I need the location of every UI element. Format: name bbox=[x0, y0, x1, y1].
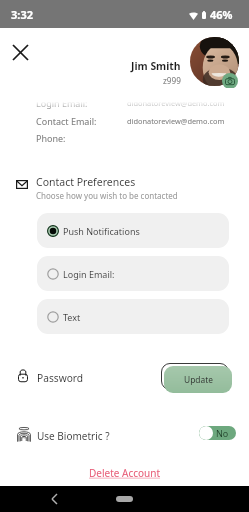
button[interactable]: Push Notifications bbox=[37, 213, 229, 248]
staticText: 3:32 bbox=[11, 7, 33, 22]
staticText: didonatoreview@demo.com bbox=[127, 116, 225, 126]
button[interactable]: Change photo bbox=[222, 73, 238, 89]
staticText: Phone: bbox=[36, 132, 66, 144]
staticText: No bbox=[216, 427, 229, 439]
staticText: Contact Preferences bbox=[36, 175, 136, 189]
staticText: Update bbox=[184, 374, 213, 385]
staticText: didonatoreview@demo.com bbox=[127, 98, 225, 108]
button[interactable]: Close bbox=[8, 40, 32, 64]
staticText: Choose how you wish to be contacted bbox=[36, 190, 178, 201]
staticText: z999 bbox=[163, 75, 181, 86]
button[interactable]: Delete Account bbox=[89, 466, 161, 480]
button[interactable]: Profile photo bbox=[190, 37, 239, 86]
button[interactable]: Back bbox=[44, 489, 64, 509]
staticText: Push Notifications bbox=[63, 225, 140, 237]
staticText: Login Email: bbox=[36, 97, 88, 109]
button[interactable]: Login Email: bbox=[37, 256, 229, 291]
staticText: 46% bbox=[210, 7, 233, 22]
button[interactable]: Use biometric toggle bbox=[199, 426, 236, 440]
staticText: Text bbox=[63, 311, 81, 323]
staticText: Use Biometric ? bbox=[37, 429, 110, 443]
staticText: Password bbox=[37, 371, 84, 385]
button[interactable]: Text bbox=[37, 299, 229, 334]
button[interactable]: Home bbox=[116, 496, 133, 502]
staticText: Contact Email: bbox=[36, 115, 97, 127]
button[interactable]: Update bbox=[164, 366, 232, 393]
staticText: Login Email: bbox=[63, 268, 115, 280]
staticText: Jim Smith bbox=[131, 59, 181, 73]
